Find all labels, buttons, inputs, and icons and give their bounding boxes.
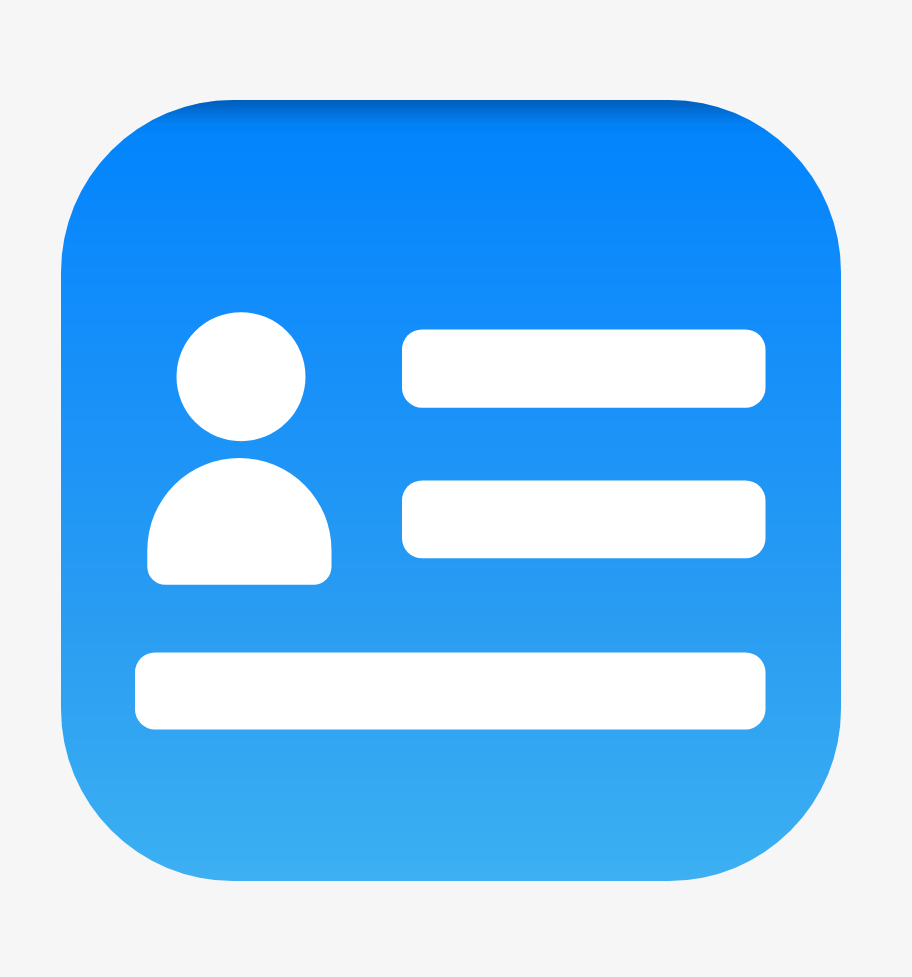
button[interactable]: Contacts app icon [0, 0, 912, 977]
